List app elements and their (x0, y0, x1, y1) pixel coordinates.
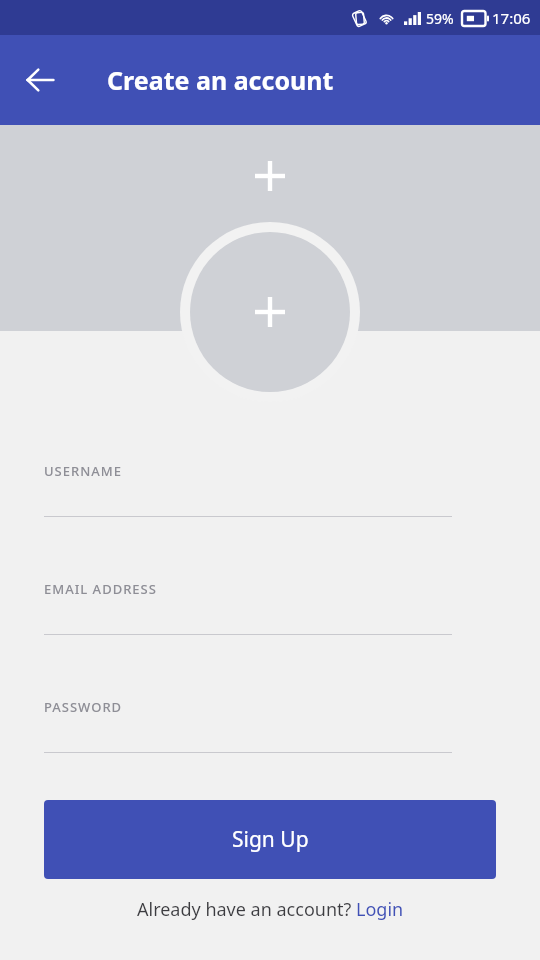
button[interactable]: PASSWORD (0, 698, 540, 753)
staticText: EMAIL ADDRESS (44, 580, 157, 598)
staticText: USERNAME (44, 462, 122, 480)
staticText: PASSWORD (44, 698, 123, 716)
button[interactable]: Sign Up (44, 800, 496, 879)
button[interactable]: Add profile photo (180, 222, 360, 402)
staticText: Sign Up (232, 825, 309, 854)
button[interactable]: Already have an account? Login (131, 891, 410, 928)
staticText: 59% (426, 9, 454, 28)
button[interactable]: USERNAME (0, 462, 540, 517)
staticText: Create an account (107, 63, 334, 97)
button[interactable]: Back (12, 52, 68, 108)
button[interactable]: Add cover photo (250, 156, 290, 196)
button[interactable]: EMAIL ADDRESS (0, 580, 540, 635)
staticText: Already have an account? Login (137, 897, 404, 922)
staticText: 17:06 (492, 8, 531, 28)
